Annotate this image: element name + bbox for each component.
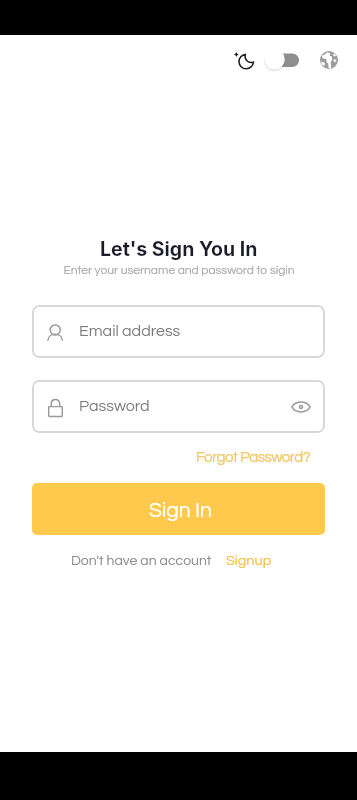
staticText: Sign In xyxy=(149,500,212,522)
button[interactable]: Toggle theme xyxy=(262,48,302,76)
button[interactable]: Password xyxy=(32,380,325,433)
staticText: Let's Sign You In xyxy=(100,237,258,261)
button[interactable]: Sign In xyxy=(32,483,325,535)
staticText: Don't have an account xyxy=(71,554,212,568)
button[interactable]: Email address xyxy=(32,305,325,358)
staticText: Password xyxy=(79,398,150,414)
button[interactable]: Show password xyxy=(286,392,317,422)
button[interactable]: Forgot Password? xyxy=(194,448,313,468)
staticText: Signup xyxy=(226,553,272,568)
button[interactable]: Change language xyxy=(316,47,341,72)
button[interactable]: Signup xyxy=(226,553,272,568)
button[interactable]: Dark mode xyxy=(230,48,258,74)
staticText: Forgot Password? xyxy=(196,450,311,466)
staticText: Enter your username and password to sigi… xyxy=(63,264,295,276)
staticText: Email address xyxy=(79,323,181,339)
